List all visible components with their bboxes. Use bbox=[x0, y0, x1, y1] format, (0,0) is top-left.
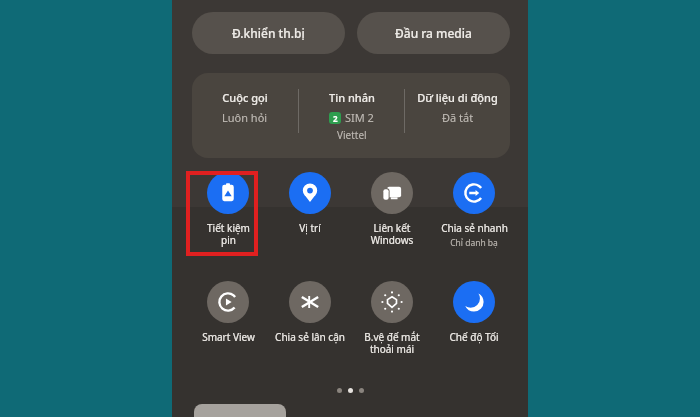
other: Smart View bbox=[207, 281, 249, 323]
button[interactable]: Tiết kiệm pin bbox=[188, 172, 268, 247]
staticText: 2 bbox=[333, 113, 338, 124]
staticText: Chia sẻ lân cận bbox=[275, 330, 345, 344]
staticText: Viettel bbox=[337, 128, 367, 142]
other: B.vệ đế mắt thoải mái bbox=[371, 281, 413, 323]
staticText: Chế độ Tối bbox=[449, 330, 499, 344]
button[interactable]: Vị trí bbox=[270, 172, 350, 235]
staticText: Vị trí bbox=[299, 221, 321, 235]
other: Liên kết Windows bbox=[371, 172, 413, 214]
staticText: Tiết kiệm pin bbox=[207, 221, 250, 247]
staticText: Đ.khiển th.bị bbox=[232, 25, 305, 41]
button[interactable]: B.vệ đế mắt thoải mái bbox=[352, 281, 432, 356]
staticText: Smart View bbox=[202, 330, 255, 344]
staticText: Liên kết Windows bbox=[352, 221, 432, 247]
other: Vị trí bbox=[289, 172, 331, 214]
other: Chia sẻ nhanh bbox=[453, 172, 495, 214]
staticText: Đã tắt bbox=[442, 110, 474, 125]
staticText: Tin nhắn bbox=[329, 90, 375, 105]
button[interactable]: Chế độ Tối bbox=[434, 281, 514, 344]
button[interactable]: Cuộc gọi bbox=[192, 73, 510, 158]
button[interactable]: Liên kết Windows bbox=[352, 172, 432, 247]
button[interactable]: Smart View bbox=[188, 281, 268, 344]
button[interactable]: Chia sẻ nhanh bbox=[434, 172, 514, 249]
other: Chế độ Tối bbox=[453, 281, 495, 323]
other: Tiết kiệm pin bbox=[207, 172, 249, 214]
staticText: B.vệ đế mắt thoải mái bbox=[364, 330, 420, 356]
staticText: SIM 2 bbox=[345, 110, 374, 125]
button[interactable]: Chia sẻ lân cận bbox=[270, 281, 350, 344]
staticText: Luôn hỏi bbox=[222, 110, 268, 125]
staticText: Đầu ra media bbox=[395, 25, 472, 41]
staticText: Chia sẻ nhanh bbox=[441, 221, 508, 235]
button[interactable]: Đ.khiển th.bị bbox=[192, 12, 345, 54]
staticText: Chỉ danh bạ bbox=[450, 237, 498, 249]
other: Chia sẻ lân cận bbox=[289, 281, 331, 323]
staticText: Dữ liệu di động bbox=[417, 90, 498, 105]
button[interactable]: Đầu ra media bbox=[357, 12, 510, 54]
staticText: Cuộc gọi bbox=[222, 90, 268, 105]
